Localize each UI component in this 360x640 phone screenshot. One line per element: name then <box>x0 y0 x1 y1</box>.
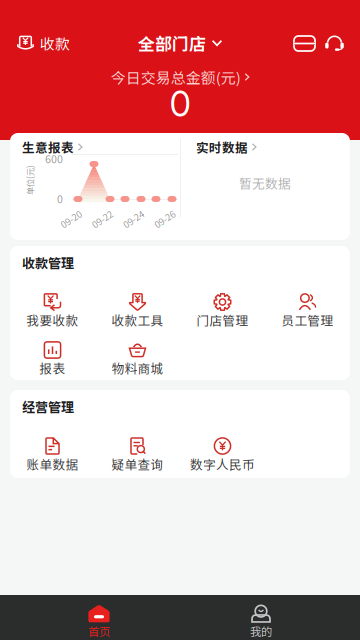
button[interactable]: 收款工具 <box>95 289 180 331</box>
staticText: 员工管理 <box>281 313 333 327</box>
staticText: 09-20 <box>59 214 82 224</box>
staticText: 数字人民币 <box>190 457 255 471</box>
staticText: 收款 <box>40 35 70 51</box>
button[interactable]: Change card <box>294 36 315 51</box>
button[interactable]: 物料商城 <box>95 337 180 379</box>
button[interactable]: 今日交易总金额(元) <box>105 69 255 85</box>
staticText: 0 <box>169 88 190 120</box>
button[interactable]: 生意报表 <box>22 139 102 155</box>
button[interactable]: Customer service <box>325 35 344 51</box>
button[interactable]: 首页 <box>18 603 180 639</box>
staticText: 暂无数据 <box>239 176 291 190</box>
staticText: 全部门店 <box>138 34 206 52</box>
staticText: 我要收款 <box>26 313 78 327</box>
button[interactable]: 门店管理 <box>180 289 265 331</box>
button[interactable]: 收款 <box>17 31 77 55</box>
staticText: 物料商城 <box>111 361 163 375</box>
staticText: 收款工具 <box>111 313 163 327</box>
button[interactable]: 实时数据 <box>196 139 276 155</box>
button[interactable]: 我的 <box>180 603 342 639</box>
staticText: 单位(元) <box>15 175 45 185</box>
staticText: 账单数据 <box>26 457 78 471</box>
staticText: 报表 <box>39 361 65 375</box>
button[interactable]: 我要收款 <box>10 289 95 331</box>
button[interactable]: 员工管理 <box>265 289 350 331</box>
button[interactable]: 全部门店 <box>135 31 225 55</box>
staticText: 09-24 <box>122 214 145 224</box>
staticText: 09-22 <box>91 214 114 224</box>
staticText: 首页 <box>88 625 110 637</box>
staticText: 门店管理 <box>196 313 248 327</box>
staticText: 0 <box>57 193 63 204</box>
staticText: 疑单查询 <box>111 457 163 471</box>
staticText: 经营管理 <box>22 399 74 414</box>
staticText: 我的 <box>250 625 272 637</box>
staticText: 实时数据 <box>196 140 248 154</box>
staticText: 600 <box>45 153 63 164</box>
staticText: 生意报表 <box>22 140 74 154</box>
staticText: 今日交易总金额(元) <box>111 69 241 85</box>
staticText: 09-26 <box>153 214 176 224</box>
button[interactable]: 报表 <box>10 337 95 379</box>
button[interactable]: 疑单查询 <box>95 433 180 475</box>
staticText: 收款管理 <box>22 255 74 270</box>
button[interactable]: 账单数据 <box>10 433 95 475</box>
button[interactable]: 数字人民币 <box>180 433 265 475</box>
